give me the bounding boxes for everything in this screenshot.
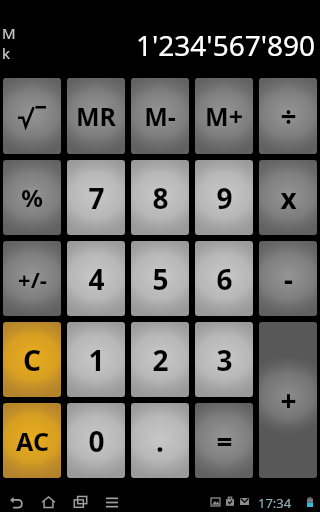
staticText: 1'234'567'890: [136, 26, 316, 64]
button[interactable]: Equals: [195, 403, 253, 478]
staticText: M: [2, 23, 16, 43]
button[interactable]: Menu: [100, 491, 124, 512]
button[interactable]: 2: [131, 322, 189, 397]
button[interactable]: %: [3, 160, 61, 235]
button[interactable]: Recent apps: [68, 491, 92, 512]
button[interactable]: .: [131, 403, 189, 478]
staticText: 1: [88, 341, 105, 379]
staticText: 0: [88, 422, 105, 460]
staticText: AC: [16, 424, 49, 458]
staticText: C: [23, 341, 41, 379]
staticText: 2: [152, 341, 169, 379]
button[interactable]: Square root: [3, 78, 61, 154]
button[interactable]: AC: [3, 403, 61, 478]
staticText: k: [2, 43, 11, 63]
staticText: M-: [144, 99, 176, 133]
staticText: =: [216, 422, 233, 460]
staticText: ÷: [280, 97, 297, 135]
button[interactable]: M+: [195, 78, 253, 154]
button[interactable]: 7: [67, 160, 125, 235]
button[interactable]: MR: [67, 78, 125, 154]
staticText: M+: [205, 99, 243, 133]
staticText: x: [280, 179, 297, 217]
button[interactable]: M-: [131, 78, 189, 154]
staticText: 6: [216, 260, 233, 298]
staticText: MR: [76, 99, 116, 133]
button[interactable]: 8: [131, 160, 189, 235]
staticText: 17:34: [258, 494, 292, 512]
button[interactable]: Multiply: [259, 160, 317, 235]
button[interactable]: 5: [131, 241, 189, 316]
button[interactable]: C: [3, 322, 61, 397]
button[interactable]: 4: [67, 241, 125, 316]
staticText: -: [284, 260, 293, 298]
button[interactable]: 1: [67, 322, 125, 397]
staticText: +/-: [18, 264, 47, 294]
staticText: 5: [152, 260, 169, 298]
button[interactable]: Plus: [259, 322, 317, 478]
button[interactable]: Minus: [259, 241, 317, 316]
staticText: 4: [88, 260, 105, 298]
button[interactable]: 0: [67, 403, 125, 478]
staticText: 8: [152, 179, 169, 217]
staticText: 9: [216, 179, 233, 217]
button[interactable]: Home: [36, 491, 60, 512]
button[interactable]: 6: [195, 241, 253, 316]
button[interactable]: Divide: [259, 78, 317, 154]
staticText: +: [280, 381, 297, 419]
button[interactable]: 9: [195, 160, 253, 235]
button[interactable]: Back: [4, 491, 28, 512]
staticText: .: [156, 422, 164, 460]
staticText: %: [21, 181, 43, 214]
button[interactable]: +/-: [3, 241, 61, 316]
staticText: 7: [88, 179, 105, 217]
staticText: 3: [216, 341, 233, 379]
button[interactable]: 3: [195, 322, 253, 397]
